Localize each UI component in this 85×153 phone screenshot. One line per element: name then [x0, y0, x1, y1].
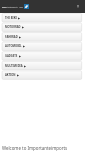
button[interactable]: THE BIKE [0, 16, 22, 20]
button[interactable]: MULTIMEDIA [0, 64, 28, 68]
staticText: MOTORRAD [5, 25, 21, 29]
button[interactable]: Home [2, 6, 23, 8]
staticText: MULTIMEDIA [5, 64, 23, 68]
staticText: GADGETS [5, 54, 18, 58]
button[interactable]: FAHRRAD [0, 35, 23, 39]
staticText: .com [19, 6, 23, 8]
button[interactable]: AKTION [0, 73, 21, 77]
staticText: tanteimports [7, 6, 18, 8]
staticText: AUTOMOBIL [5, 44, 22, 48]
button[interactable]: Language [24, 4, 29, 9]
button[interactable]: Location [73, 2, 82, 11]
staticText: Welcome to Importanteimports [2, 145, 68, 151]
staticText: AKTION [5, 73, 16, 77]
staticText: FAHRRAD [5, 35, 18, 39]
staticText: THE BIKE [5, 16, 17, 20]
staticText: impor [2, 6, 7, 8]
button[interactable]: GADGETS [0, 54, 23, 58]
button[interactable]: MOTORRAD [0, 25, 26, 29]
button[interactable]: AUTOMOBIL [0, 44, 27, 48]
